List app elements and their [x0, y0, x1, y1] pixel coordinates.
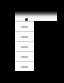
other: Profile	[25, 18, 28, 21]
button[interactable]	[15, 61, 34, 71]
button[interactable]	[15, 31, 34, 41]
button[interactable]	[15, 51, 34, 61]
button[interactable]	[15, 41, 34, 51]
button[interactable]	[15, 21, 34, 31]
